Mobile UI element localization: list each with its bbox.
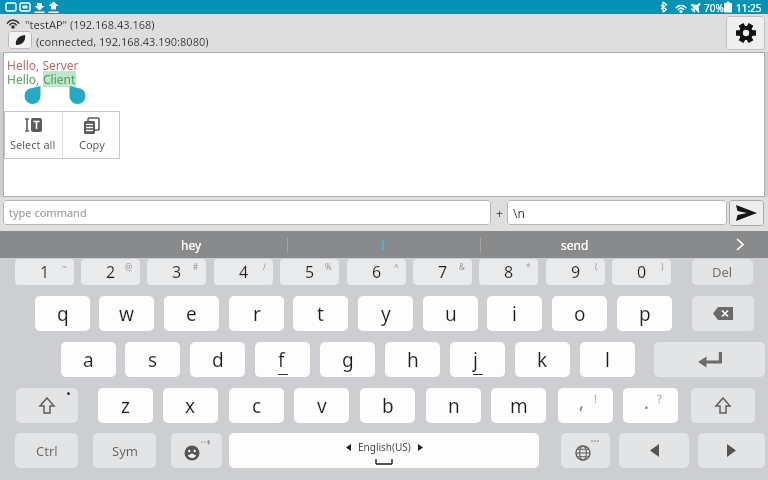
- button[interactable]: u: [423, 296, 478, 331]
- staticText: 1: [40, 261, 50, 283]
- button[interactable]: Del: [692, 259, 753, 285]
- button[interactable]: English(US): [229, 433, 539, 468]
- staticText: 11:25: [736, 1, 762, 15]
- button[interactable]: 1: [15, 259, 74, 285]
- button[interactable]: 7: [413, 259, 472, 285]
- button[interactable]: e: [164, 296, 219, 331]
- button[interactable]: [729, 200, 764, 226]
- staticText: Del: [712, 263, 733, 281]
- button[interactable]: [698, 433, 765, 468]
- button[interactable]: [16, 388, 78, 423]
- button[interactable]: 3: [147, 259, 206, 285]
- button[interactable]: w: [99, 296, 154, 331]
- button[interactable]: m: [491, 388, 546, 423]
- staticText: m: [510, 393, 528, 419]
- button[interactable]: a: [61, 342, 116, 377]
- button[interactable]: s: [125, 342, 180, 377]
- button[interactable]: n: [426, 388, 481, 423]
- button[interactable]: k: [515, 342, 570, 377]
- button[interactable]: 4: [214, 259, 273, 285]
- button[interactable]: v: [294, 388, 349, 423]
- staticText: t: [317, 301, 324, 327]
- staticText: 0: [637, 261, 647, 283]
- staticText: 8: [504, 261, 514, 283]
- button[interactable]: [8, 31, 32, 49]
- staticText: s: [148, 347, 158, 373]
- staticText: &: [459, 261, 465, 272]
- button[interactable]: d: [190, 342, 245, 377]
- button[interactable]: g: [320, 342, 375, 377]
- button[interactable]: [654, 342, 765, 377]
- staticText: i: [512, 301, 517, 327]
- staticText: ,: [579, 390, 584, 415]
- staticText: ): [661, 261, 664, 272]
- staticText: ^: [394, 261, 399, 272]
- staticText: .: [644, 390, 649, 415]
- staticText: b: [382, 393, 394, 419]
- button[interactable]: b: [360, 388, 415, 423]
- button[interactable]: q: [35, 296, 90, 331]
- button[interactable]: 5: [280, 259, 339, 285]
- button[interactable]: send: [480, 231, 670, 258]
- staticText: g: [342, 347, 354, 373]
- staticText: \n: [513, 205, 525, 221]
- button[interactable]: type command: [3, 200, 491, 225]
- button[interactable]: [171, 433, 222, 468]
- button[interactable]: Select all: [4, 111, 62, 159]
- button[interactable]: Sym: [93, 433, 156, 468]
- button[interactable]: t: [293, 296, 348, 331]
- button[interactable]: [692, 296, 754, 331]
- staticText: "testAP" (192.168.43.168): [25, 17, 155, 32]
- button[interactable]: \n: [507, 200, 727, 225]
- staticText: e: [186, 301, 197, 327]
- staticText: %: [325, 261, 332, 272]
- button[interactable]: 2: [81, 259, 140, 285]
- button[interactable]: z: [98, 388, 153, 423]
- button[interactable]: f: [255, 342, 310, 377]
- staticText: n: [448, 393, 460, 419]
- staticText: z: [121, 393, 130, 419]
- button[interactable]: [561, 433, 610, 468]
- button[interactable]: [691, 388, 755, 423]
- button[interactable]: c: [229, 388, 284, 423]
- button[interactable]: I: [287, 231, 480, 258]
- button[interactable]: Ctrl: [15, 433, 78, 468]
- button[interactable]: [726, 16, 765, 50]
- staticText: !: [594, 391, 597, 406]
- staticText: +: [496, 205, 503, 221]
- staticText: ~: [62, 261, 67, 272]
- staticText: Ctrl: [36, 442, 58, 460]
- staticText: Select all: [10, 137, 56, 152]
- staticText: l: [605, 347, 610, 373]
- staticText: p: [639, 301, 651, 327]
- button[interactable]: r: [229, 296, 284, 331]
- button[interactable]: hey: [96, 231, 287, 258]
- button[interactable]: .: [623, 388, 678, 423]
- button[interactable]: [619, 433, 689, 468]
- button[interactable]: y: [358, 296, 413, 331]
- staticText: @: [125, 261, 133, 272]
- staticText: v: [317, 393, 327, 419]
- button[interactable]: l: [580, 342, 635, 377]
- staticText: Copy: [79, 137, 105, 152]
- staticText: hey: [181, 237, 202, 253]
- staticText: #: [193, 261, 199, 272]
- button[interactable]: 8: [479, 259, 538, 285]
- button[interactable]: 9: [546, 259, 605, 285]
- staticText: /: [263, 261, 266, 272]
- button[interactable]: h: [385, 342, 440, 377]
- button[interactable]: p: [617, 296, 672, 331]
- button[interactable]: o: [552, 296, 607, 331]
- staticText: I: [381, 237, 386, 253]
- button[interactable]: ,: [558, 388, 613, 423]
- staticText: (connected, 192.168.43.190:8080): [36, 34, 209, 49]
- staticText: f: [278, 347, 285, 373]
- staticText: o: [574, 301, 586, 327]
- button[interactable]: x: [163, 388, 218, 423]
- button[interactable]: 0: [612, 259, 671, 285]
- button[interactable]: i: [487, 296, 542, 331]
- button[interactable]: j: [450, 342, 505, 377]
- button[interactable]: Copy: [63, 111, 120, 159]
- staticText: 9: [571, 261, 581, 283]
- button[interactable]: 6: [347, 259, 406, 285]
